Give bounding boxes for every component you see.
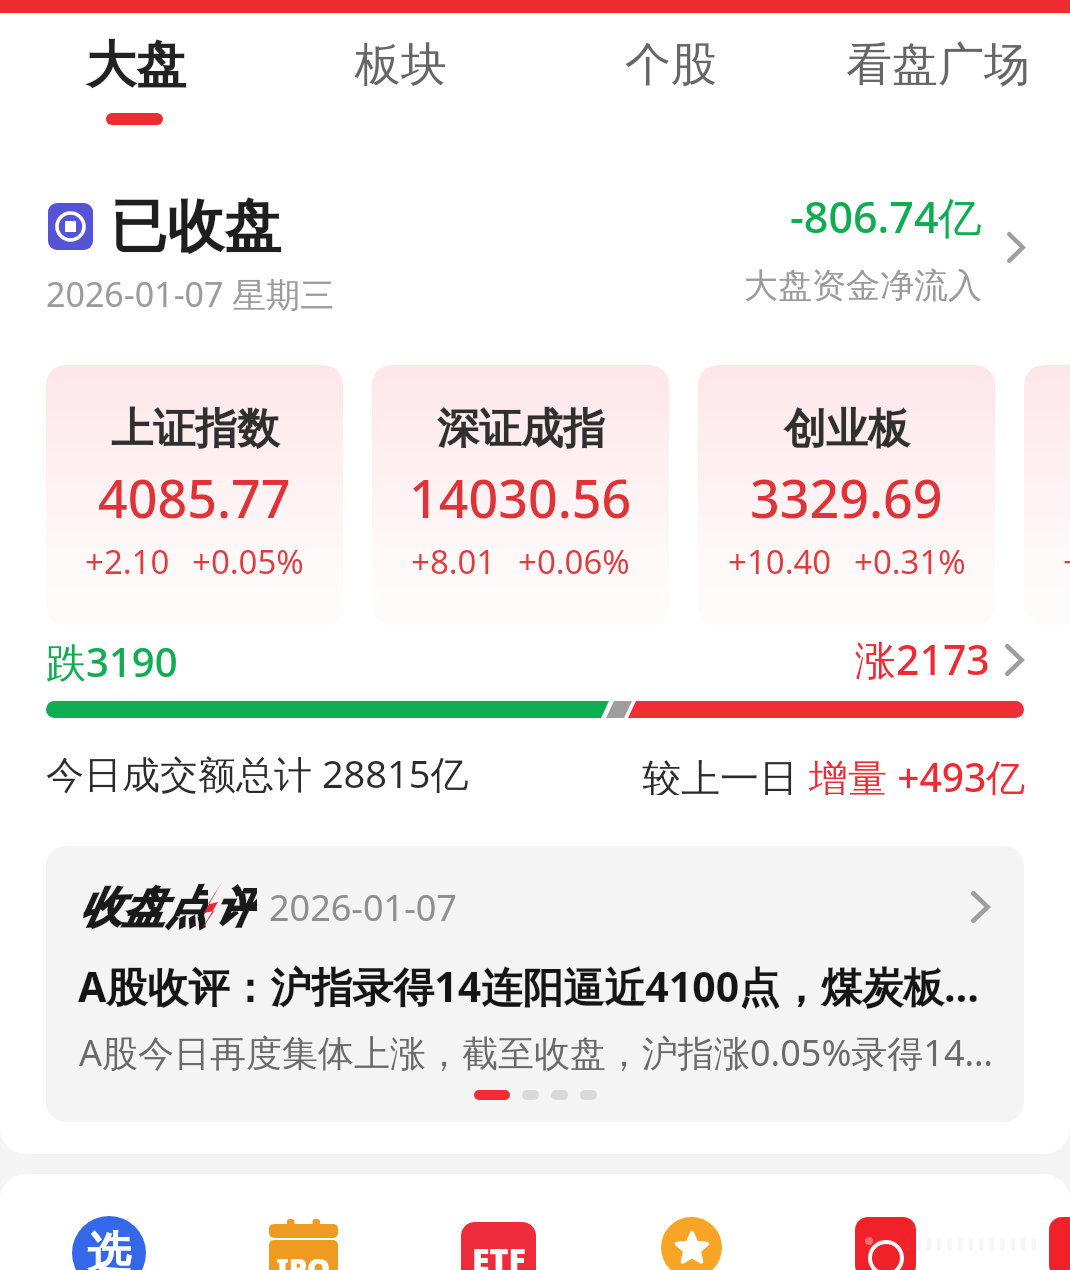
button[interactable]: 选股 (54, 1198, 164, 1270)
button[interactable]: IPO 日历 (248, 1199, 358, 1270)
staticText: 14030.56 (409, 462, 632, 533)
button[interactable]: 上证指数 (46, 365, 343, 625)
staticText: 较上一日 (642, 750, 809, 795)
button[interactable]: 更多入口 (1024, 1192, 1070, 1270)
staticText: 已收盘 (110, 191, 281, 263)
staticText: 增量 +493亿 (809, 750, 1026, 795)
button[interactable]: 创业板 (698, 365, 995, 625)
button[interactable]: 北证50 (1024, 365, 1070, 625)
staticText: +0.31% (854, 539, 966, 584)
button[interactable] (0, 630, 1070, 730)
staticText: A股收评：沪指录得14连阳逼近4100点，煤炭板… (78, 958, 1003, 1014)
button[interactable]: 大盘 (6, 15, 266, 115)
button[interactable]: 个股 (541, 15, 801, 115)
staticText: 板块 (355, 36, 447, 94)
staticText: +0.06% (518, 539, 630, 584)
staticText: 2026-01-07 (269, 883, 457, 932)
staticText: 看盘广场 (846, 36, 1030, 94)
staticText: 评 (214, 881, 257, 933)
staticText: 4085.77 (98, 462, 291, 533)
staticText: A股今日再度集体上涨，截至收盘，沪指涨0.05%录得14连… (79, 1028, 1004, 1077)
button[interactable]: 看盘广场 (808, 15, 1068, 115)
staticText: ETF (472, 1238, 526, 1270)
staticText: 创业板 (784, 403, 910, 456)
staticText: +10.40 (728, 539, 832, 584)
staticText: 大盘 (86, 34, 186, 97)
staticText: IPO (276, 1248, 331, 1270)
staticText: +0.05% (192, 539, 304, 584)
staticText: 3329.69 (750, 462, 943, 533)
button[interactable]: 打新日历 (830, 1192, 940, 1270)
button[interactable]: ETF (443, 1204, 553, 1270)
staticText: 大盘资金净流入 (744, 264, 982, 307)
staticText: 深证成指 (437, 403, 605, 456)
staticText: 上证指数 (111, 403, 279, 456)
staticText: -806.74亿 (790, 187, 982, 246)
staticText: 涨2173 (855, 631, 990, 687)
button[interactable]: 自选 (636, 1192, 746, 1270)
staticText: 跌3190 (46, 634, 178, 689)
staticText: 选 (87, 1226, 131, 1270)
staticText: 个股 (625, 36, 717, 94)
staticText: +2.10 (85, 539, 170, 584)
staticText: +4.12 (1063, 539, 1070, 584)
button[interactable]: -806.74亿 (700, 186, 1040, 312)
button[interactable]: 板块 (271, 15, 531, 115)
staticText: 收盘点 (79, 881, 208, 933)
staticText: +8.01 (411, 539, 496, 584)
button[interactable]: 收盘点 (46, 846, 1024, 1122)
staticText: 今日成交额总计 28815亿 (46, 747, 469, 799)
button[interactable]: 深证成指 (372, 365, 669, 625)
staticText: 2026-01-07 星期三 (46, 271, 335, 317)
